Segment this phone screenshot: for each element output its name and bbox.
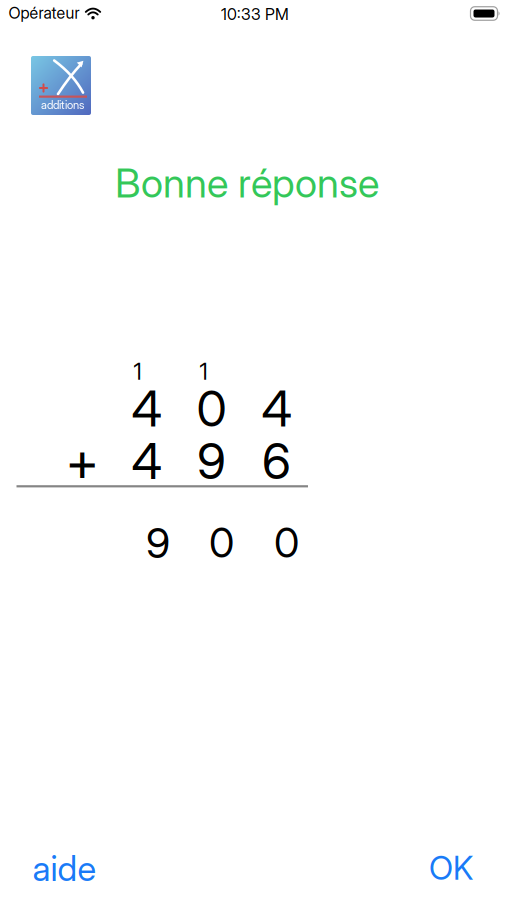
button[interactable]: additions [31,56,91,115]
staticText: 0 [196,379,226,438]
staticText: 4 [261,379,291,438]
button[interactable]: aide [32,847,96,889]
staticText: OK [429,849,473,887]
staticText: 4 [131,431,161,491]
button[interactable]: OK [429,849,473,887]
staticText: 10:33 PM [221,5,289,24]
staticText: 6 [262,431,291,491]
staticText: 9 [146,518,170,568]
staticText: 0 [209,517,234,567]
staticText: aide [32,847,96,889]
staticText: 1 [199,358,207,385]
staticText: + [65,429,98,493]
staticText: Opérateur [8,3,79,23]
staticText: 4 [131,379,161,438]
staticText: 0 [274,517,299,567]
staticText: 1 [133,358,141,385]
staticText: additions [41,98,84,112]
staticText: Bonne réponse [115,159,379,207]
staticText: 9 [197,431,226,491]
